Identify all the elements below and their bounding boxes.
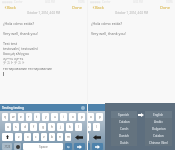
staticText: p [81,115,83,119]
button[interactable]: o [88,113,94,121]
staticText: Czech [120,127,129,131]
staticText: Back [7,5,16,10]
staticText: Space [39,145,48,149]
staticText: b [51,135,53,139]
button[interactable]: p [78,113,85,121]
staticText: ¿Hola cómo estás? [91,21,122,26]
button[interactable]: Czech [111,125,137,132]
button[interactable]: English [145,111,172,118]
button[interactable]: y [42,113,49,121]
staticText: Done [160,5,171,10]
button[interactable]: z [15,133,22,141]
staticText: o [90,115,92,119]
staticText: x [27,135,29,139]
button[interactable]: Switch [65,143,72,150]
button[interactable]: p [96,113,103,121]
button[interactable]: Back [3,5,17,10]
staticText: d [24,125,26,129]
button[interactable]: d [21,123,28,131]
staticText: v [43,135,45,139]
staticText: y [45,115,47,119]
staticText: Dutch [120,141,129,145]
button[interactable]: h [48,123,55,131]
staticText: l [96,125,97,129]
button[interactable]: j [57,123,64,131]
button[interactable]: r [26,113,32,121]
staticText: u [54,115,56,119]
staticText: k [88,125,89,129]
button[interactable]: l [75,123,82,131]
button[interactable]: Catalan [111,118,137,125]
staticText: 4:02 PM [45,0,55,4]
button[interactable]: m [88,133,89,141]
button[interactable]: l [93,123,100,131]
button[interactable]: c [33,133,39,141]
button[interactable]: Spanish [111,111,137,118]
button[interactable]: o [69,113,76,121]
staticText: testovalní, testovalní [3,46,38,51]
button[interactable]: Close [81,106,85,110]
staticText: Carrier [14,0,23,4]
staticText: h [51,125,53,129]
button[interactable]: w [10,113,16,121]
button[interactable]: f [30,123,37,131]
staticText: Chinese (Sim) [149,141,169,145]
button[interactable]: Shift [2,133,13,141]
staticText: тестирование тестирование [3,66,53,71]
button[interactable]: Bulgarian [145,125,172,132]
staticText: Done [72,5,83,10]
button[interactable]: Catalan [145,132,172,139]
button[interactable]: m [65,133,71,141]
staticText: k [69,125,71,129]
staticText: Test test [3,41,18,46]
staticText: ¿Hola cómo estás? [3,21,34,26]
staticText: ⇆ [67,145,70,148]
button[interactable]: k [88,123,91,131]
button[interactable]: Danish [111,132,137,139]
button[interactable]: v [41,133,47,141]
button[interactable]: b [49,133,55,141]
button[interactable]: a [5,123,11,131]
staticText: m [67,135,70,139]
button[interactable]: Backspace [90,133,104,141]
button[interactable]: Send [74,143,85,150]
button[interactable]: Done [159,5,172,10]
staticText: n [59,135,61,139]
staticText: Carrier [102,0,111,4]
staticText: Arabic [154,120,163,124]
button[interactable]: i [60,113,67,121]
button[interactable]: .?123 [2,143,12,150]
staticText: p [99,115,101,119]
staticText: ●●●●● [2,1,13,4]
button[interactable]: Dutch [111,139,137,146]
staticText: z [18,135,20,139]
staticText: テストテスト [3,61,26,66]
staticText: Testing testing [2,106,24,110]
button[interactable]: Send [92,143,103,150]
button[interactable]: t [34,113,40,121]
button[interactable]: s [13,123,19,131]
button[interactable]: n [57,133,63,141]
button[interactable]: Done [71,5,84,10]
button[interactable]: Arabic [145,118,172,125]
staticText: c [35,135,37,139]
button[interactable]: Emoji [14,143,21,150]
staticText: October 1, 2014, 4:02 PM [0,11,87,15]
button[interactable]: Space [23,143,63,150]
staticText: s [15,125,17,129]
button[interactable]: x [24,133,31,141]
button[interactable]: Switch [88,143,90,150]
button[interactable]: g [39,123,46,131]
button[interactable]: q [2,113,8,121]
button[interactable]: k [66,123,73,131]
staticText: o [72,115,74,119]
staticText: t [36,115,38,119]
button[interactable]: Back [91,5,105,10]
button[interactable]: u [51,113,58,121]
staticText: g [42,125,44,129]
button[interactable]: e [18,113,24,121]
staticText: .?123 [4,145,11,149]
staticText: Very well, thank you! [91,31,126,36]
button[interactable]: Chinese (Sim) [145,139,172,146]
button[interactable]: Backspace [72,133,86,141]
